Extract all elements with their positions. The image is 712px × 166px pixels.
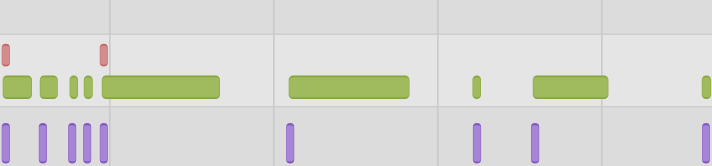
button[interactable]: Performance timeline chart: [0, 0, 712, 166]
